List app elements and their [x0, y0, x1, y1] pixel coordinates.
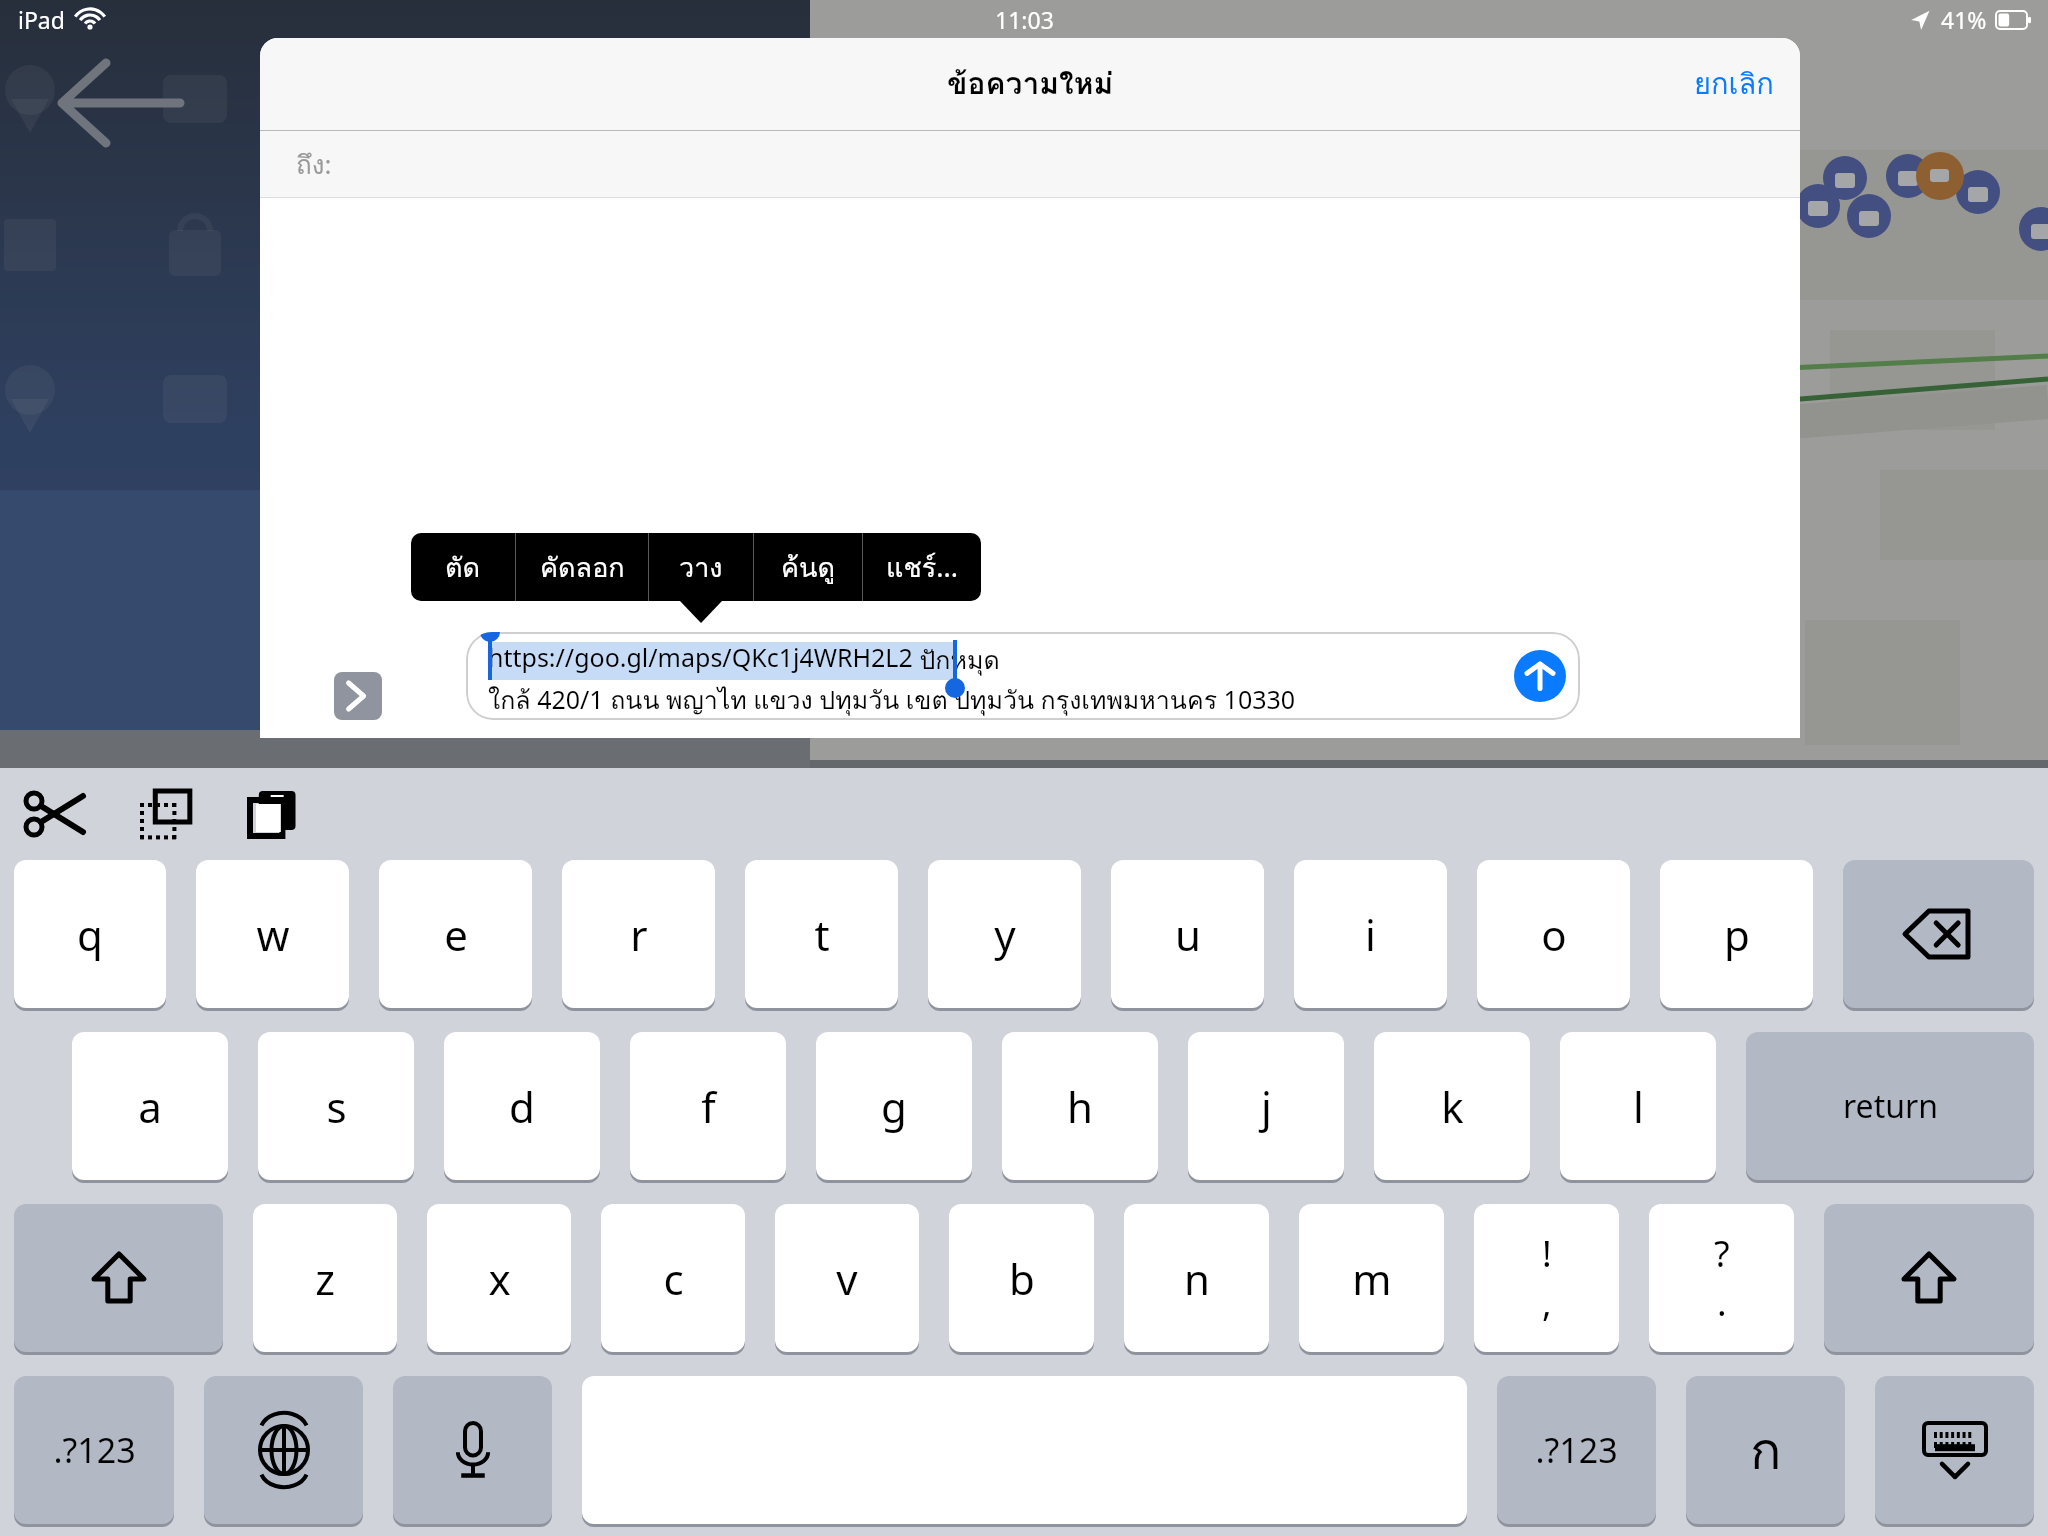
button[interactable]: k: [1374, 1032, 1530, 1180]
staticText: วาง: [679, 546, 723, 589]
button[interactable]: f: [630, 1032, 786, 1180]
button[interactable]: b: [949, 1204, 1094, 1352]
staticText: x: [488, 1250, 511, 1307]
staticText: ก: [1750, 1409, 1782, 1492]
button[interactable]: o: [1477, 860, 1630, 1008]
button[interactable]: t: [745, 860, 898, 1008]
staticText: e: [444, 906, 468, 963]
button[interactable]: Backspace: [1843, 860, 2034, 1008]
staticText: j: [1261, 1078, 1272, 1135]
staticText: ?: [1714, 1229, 1730, 1278]
button[interactable]: Cut: [22, 781, 88, 847]
button[interactable]: Next keyboard: [204, 1376, 363, 1524]
staticText: ปักหมุด: [913, 640, 1000, 680]
button[interactable]: w: [196, 860, 349, 1008]
button[interactable]: Send: [1514, 650, 1566, 702]
staticText: a: [138, 1078, 162, 1135]
staticText: f: [701, 1078, 716, 1135]
button[interactable]: ยกเลิก: [1668, 45, 1800, 123]
staticText: c: [663, 1250, 684, 1307]
staticText: t: [814, 906, 830, 963]
button[interactable]: Shift: [1824, 1204, 2034, 1352]
staticText: u: [1175, 906, 1201, 963]
staticText: .: [1717, 1278, 1727, 1327]
button[interactable]: วาง: [649, 533, 753, 601]
staticText: s: [326, 1078, 347, 1135]
button[interactable]: e: [379, 860, 532, 1008]
staticText: .?123: [1535, 1427, 1618, 1473]
staticText: ถึง:: [296, 144, 332, 185]
button[interactable]: m: [1299, 1204, 1444, 1352]
staticText: ข้อความใหม่: [947, 60, 1114, 108]
button[interactable]: x: [427, 1204, 571, 1352]
button[interactable]: d: [444, 1032, 600, 1180]
staticText: ยกเลิก: [1694, 61, 1774, 107]
staticText: v: [836, 1250, 858, 1307]
button[interactable]: https://goo.gl/maps/QKc1j4WRH2L2: [466, 632, 1580, 720]
staticText: .?123: [53, 1427, 136, 1473]
staticText: r: [630, 906, 648, 963]
staticText: l: [1633, 1078, 1644, 1135]
button[interactable]: p: [1660, 860, 1813, 1008]
button[interactable]: ?: [1649, 1204, 1794, 1352]
button[interactable]: Paste: [242, 781, 308, 847]
staticText: o: [1541, 906, 1567, 963]
button[interactable]: u: [1111, 860, 1264, 1008]
staticText: g: [881, 1078, 907, 1135]
button[interactable]: ถึง:: [260, 131, 1800, 197]
button[interactable]: ค้นดู: [754, 533, 862, 601]
button[interactable]: .?123: [1497, 1376, 1656, 1524]
button[interactable]: return: [1746, 1032, 2034, 1180]
button[interactable]: y: [928, 860, 1081, 1008]
staticText: ,: [1542, 1278, 1552, 1327]
staticText: y: [994, 906, 1016, 963]
staticText: d: [509, 1078, 535, 1135]
staticText: q: [77, 906, 103, 963]
button[interactable]: ตัด: [411, 533, 515, 601]
button[interactable]: a: [72, 1032, 228, 1180]
staticText: b: [1009, 1250, 1035, 1307]
button[interactable]: n: [1124, 1204, 1269, 1352]
staticText: 11:03: [995, 4, 1054, 35]
button[interactable]: Hide keyboard: [1875, 1376, 2034, 1524]
button[interactable]: i: [1294, 860, 1447, 1008]
staticText: iPad: [18, 4, 65, 35]
button[interactable]: v: [775, 1204, 919, 1352]
staticText: ตัด: [445, 546, 481, 589]
button[interactable]: Shift: [14, 1204, 223, 1352]
button[interactable]: q: [14, 860, 166, 1008]
button[interactable]: แชร์...: [863, 533, 981, 601]
staticText: ค้นดู: [781, 546, 836, 589]
staticText: z: [315, 1250, 335, 1307]
button[interactable]: c: [601, 1204, 745, 1352]
staticText: w: [256, 906, 290, 963]
staticText: ใกล้ 420/1 ถนน พญาไท แขวง ปทุมวัน เขต ปท…: [488, 680, 1296, 720]
button[interactable]: !: [1474, 1204, 1619, 1352]
button[interactable]: g: [816, 1032, 972, 1180]
button[interactable]: r: [562, 860, 715, 1008]
staticText: k: [1441, 1078, 1464, 1135]
staticText: p: [1724, 906, 1750, 963]
button[interactable]: j: [1188, 1032, 1344, 1180]
button[interactable]: Copy: [132, 781, 198, 847]
staticText: return: [1843, 1084, 1938, 1128]
staticText: i: [1365, 906, 1376, 963]
staticText: n: [1184, 1250, 1210, 1307]
staticText: แชร์...: [886, 546, 958, 589]
staticText: m: [1352, 1250, 1392, 1307]
staticText: คัดลอก: [540, 546, 625, 589]
staticText: 41%: [1941, 4, 1987, 35]
button[interactable]: Dictate: [393, 1376, 552, 1524]
staticText: https://goo.gl/maps/QKc1j4WRH2L2: [488, 640, 913, 674]
button[interactable]: คัดลอก: [516, 533, 648, 601]
staticText: h: [1067, 1078, 1093, 1135]
button[interactable]: s: [258, 1032, 414, 1180]
button[interactable]: l: [1560, 1032, 1716, 1180]
staticText: !: [1542, 1229, 1552, 1278]
button[interactable]: h: [1002, 1032, 1158, 1180]
button[interactable]: .?123: [14, 1376, 174, 1524]
button[interactable]: Expand: [334, 672, 382, 720]
button[interactable]: Thai keyboard: [1686, 1376, 1845, 1524]
button[interactable]: z: [253, 1204, 397, 1352]
